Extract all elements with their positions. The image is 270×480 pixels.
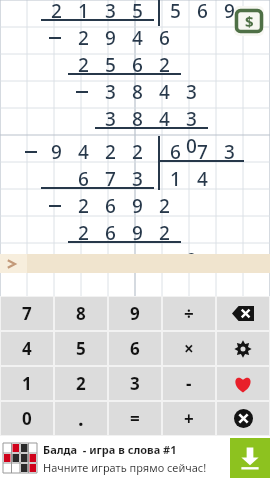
staticText: 2 xyxy=(78,220,89,246)
button[interactable]: 4 xyxy=(1,332,53,365)
staticText: 6 xyxy=(105,220,116,246)
staticText: 6 xyxy=(105,193,116,219)
staticText: 3 xyxy=(105,79,116,105)
staticText: 2 xyxy=(132,139,143,165)
staticText: 4 xyxy=(159,106,170,132)
staticText: Балда - игра в слова #1 xyxy=(43,442,177,457)
staticText: 4 xyxy=(78,139,89,165)
staticText: 6 xyxy=(130,337,140,360)
staticText: 9 xyxy=(130,302,140,325)
staticText: 5 xyxy=(132,0,143,24)
staticText: 3 xyxy=(186,106,197,132)
button[interactable]: Buy / Remove ads xyxy=(234,6,264,36)
staticText: 4 xyxy=(132,25,143,51)
staticText: $ xyxy=(245,11,254,31)
staticText: ÷ xyxy=(184,302,194,325)
staticText: 2 xyxy=(51,0,62,24)
button[interactable]: 1 xyxy=(1,367,53,400)
staticText: 3 xyxy=(105,0,116,24)
staticText: 7 xyxy=(197,139,208,165)
staticText: 8 xyxy=(132,79,143,105)
button[interactable] xyxy=(0,254,270,273)
staticText: 1 xyxy=(22,372,32,395)
staticText: 2 xyxy=(78,25,89,51)
staticText: 0 xyxy=(186,133,197,159)
button[interactable]: 5 xyxy=(55,332,107,365)
staticText: 8 xyxy=(76,302,86,325)
staticText: 6 xyxy=(170,139,181,165)
staticText: 7 xyxy=(105,166,116,192)
button[interactable]: - xyxy=(163,367,215,400)
staticText: 9 xyxy=(51,139,62,165)
staticText: 9 xyxy=(132,220,143,246)
staticText: 5 xyxy=(105,52,116,78)
staticText: 3 xyxy=(224,139,235,165)
staticText: 4 xyxy=(22,337,32,360)
staticText: 7 xyxy=(22,302,32,325)
staticText: 4 xyxy=(159,79,170,105)
staticText: 5 xyxy=(170,0,181,24)
staticText: 6 xyxy=(132,52,143,78)
button[interactable]: 8 xyxy=(55,297,107,330)
staticText: 2 xyxy=(105,139,116,165)
staticText: 4 xyxy=(197,166,208,192)
staticText: 6 xyxy=(159,25,170,51)
button[interactable]: 3 xyxy=(109,367,161,400)
staticText: - xyxy=(186,372,192,395)
staticText: Начните играть прямо сейчас! xyxy=(43,460,207,475)
staticText: 0 xyxy=(22,407,32,430)
staticText: 8 xyxy=(132,106,143,132)
staticText: 3 xyxy=(130,372,140,395)
staticText: 9 xyxy=(105,25,116,51)
button[interactable]: . xyxy=(55,402,107,435)
staticText: 6 xyxy=(197,0,208,24)
staticText: 2 xyxy=(78,193,89,219)
staticText: 0 xyxy=(186,247,197,273)
staticText: × xyxy=(184,337,194,360)
staticText: . xyxy=(78,405,84,432)
staticText: 5 xyxy=(76,337,86,360)
staticText: 2 xyxy=(159,193,170,219)
staticText: 3 xyxy=(105,106,116,132)
staticText: 2 xyxy=(159,52,170,78)
staticText: + xyxy=(184,407,194,430)
button[interactable]: Балда - игра в слова #1 xyxy=(0,436,270,480)
button[interactable]: + xyxy=(163,402,215,435)
staticText: 1 xyxy=(170,166,181,192)
button[interactable]: = xyxy=(109,402,161,435)
staticText: = xyxy=(130,407,140,430)
staticText: 9 xyxy=(132,193,143,219)
staticText: 1 xyxy=(78,0,89,24)
staticText: 3 xyxy=(186,79,197,105)
button[interactable]: Settings xyxy=(217,332,269,365)
staticText: 6 xyxy=(78,166,89,192)
button[interactable]: Clear xyxy=(217,402,269,435)
button[interactable]: 6 xyxy=(109,332,161,365)
staticText: 3 xyxy=(132,166,143,192)
button[interactable]: 2 xyxy=(55,367,107,400)
staticText: 2 xyxy=(78,52,89,78)
button[interactable]: × xyxy=(163,332,215,365)
button[interactable]: ÷ xyxy=(163,297,215,330)
button[interactable]: 0 xyxy=(1,402,53,435)
staticText: 2 xyxy=(76,372,86,395)
button[interactable]: Favorite xyxy=(217,367,269,400)
button[interactable]: Install xyxy=(230,438,270,478)
staticText: 2 xyxy=(159,220,170,246)
staticText: 9 xyxy=(224,0,235,24)
button[interactable]: 7 xyxy=(1,297,53,330)
button[interactable]: Backspace xyxy=(217,297,269,330)
button[interactable]: 9 xyxy=(109,297,161,330)
